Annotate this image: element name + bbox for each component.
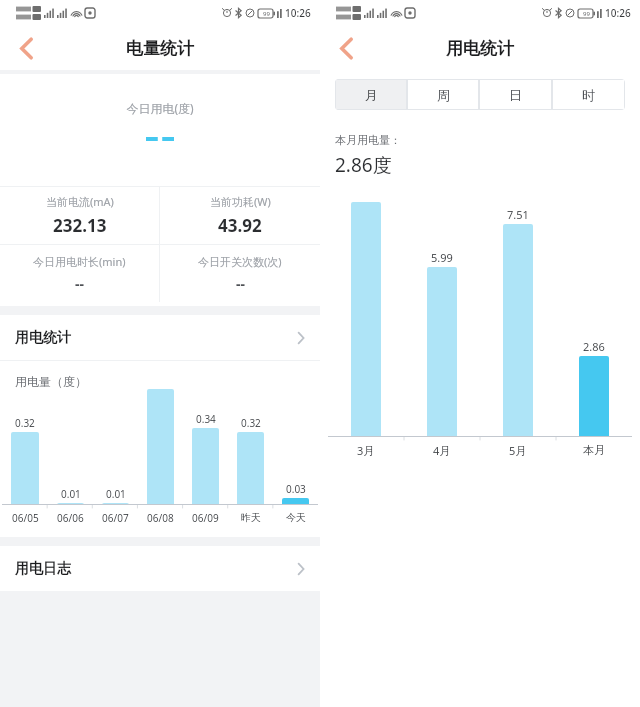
staticText: 10:26: [285, 6, 311, 20]
staticText: 日: [509, 87, 522, 103]
staticText: 今日用电时长(min): [33, 254, 126, 269]
staticText: 5月: [509, 443, 527, 458]
staticText: 当前功耗(W): [210, 194, 271, 209]
staticText: 今日用电(度): [0, 100, 320, 116]
staticText: 0.32: [241, 416, 261, 430]
button[interactable]: 周: [407, 79, 479, 110]
staticText: --: [75, 274, 84, 293]
staticText: 06/07: [102, 511, 129, 525]
staticText: 0.03: [286, 482, 306, 496]
staticText: 99: [583, 10, 590, 18]
button[interactable]: 日: [479, 79, 552, 110]
staticText: 用电量（度）: [15, 374, 87, 389]
staticText: 本月: [583, 443, 605, 457]
staticText: 3月: [357, 443, 375, 458]
staticText: 周: [437, 87, 450, 103]
staticText: 0.01: [61, 487, 81, 501]
staticText: 10:26: [605, 6, 631, 20]
staticText: 2.86: [583, 339, 605, 354]
button[interactable]: Back: [5, 27, 47, 69]
staticText: 0.32: [15, 416, 35, 430]
staticText: 当前电流(mA): [46, 194, 114, 209]
staticText: 4月: [433, 443, 451, 458]
staticText: 用电统计: [15, 329, 71, 347]
staticText: 06/09: [192, 511, 219, 525]
staticText: 今日开关次数(次): [198, 254, 282, 269]
button[interactable]: 时: [552, 79, 625, 110]
staticText: 06/06: [57, 511, 84, 525]
staticText: 用电统计: [446, 38, 514, 59]
staticText: 99: [263, 10, 270, 18]
staticText: 本月用电量：: [335, 133, 401, 147]
button[interactable]: Back: [325, 27, 367, 69]
staticText: 时: [582, 87, 595, 103]
staticText: 43.92: [218, 214, 262, 237]
button[interactable]: 月: [335, 79, 407, 110]
staticText: 0.34: [196, 412, 216, 426]
staticText: 用电日志: [15, 560, 71, 578]
staticText: 7.51: [507, 207, 529, 222]
staticText: 今天: [286, 511, 306, 524]
staticText: 月: [365, 87, 378, 103]
staticText: 06/08: [147, 511, 174, 525]
staticText: 232.13: [53, 214, 107, 237]
staticText: 昨天: [241, 511, 261, 524]
staticText: 2.86度: [335, 152, 392, 178]
staticText: 0.01: [106, 487, 126, 501]
staticText: 5.99: [431, 250, 453, 265]
staticText: --: [236, 274, 245, 293]
button[interactable]: 用电日志: [0, 546, 320, 591]
button[interactable]: 用电统计: [0, 315, 320, 360]
staticText: 电量统计: [126, 38, 194, 59]
staticText: 06/05: [12, 511, 39, 525]
